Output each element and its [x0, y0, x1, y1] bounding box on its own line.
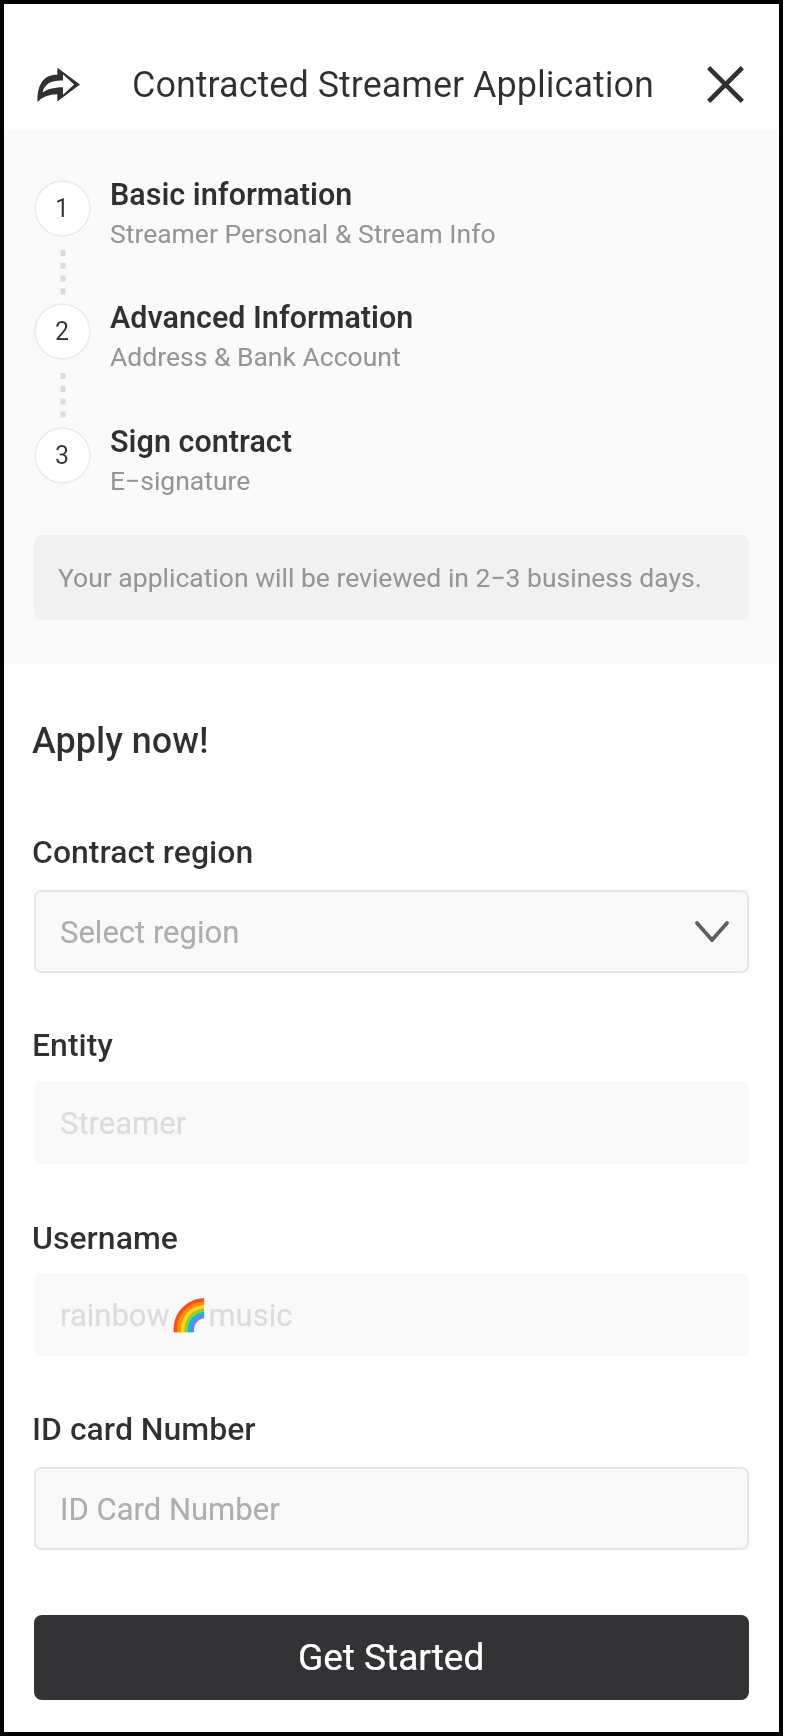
staticText: Apply now!	[32, 720, 209, 762]
staticText: 2	[55, 317, 70, 346]
staticText: 1	[55, 194, 70, 223]
button[interactable]: Share	[27, 53, 89, 115]
staticText: Streamer Personal & Stream Info	[110, 218, 496, 249]
button[interactable]: ID Card Number	[34, 1467, 749, 1550]
button[interactable]: Close	[695, 54, 755, 114]
staticText: E−signature	[110, 465, 251, 496]
staticText: Select region	[60, 914, 240, 950]
staticText: Entity	[32, 1026, 114, 1064]
staticText: Sign contract	[110, 424, 292, 460]
staticText: Streamer	[60, 1105, 187, 1141]
staticText: Get Started	[298, 1636, 485, 1679]
staticText: ID Card Number	[60, 1491, 280, 1527]
staticText: rainbow🌈music	[60, 1297, 293, 1333]
button[interactable]: Streamer	[34, 1081, 749, 1164]
staticText: Your application will be reviewed in 2−3…	[58, 562, 702, 593]
staticText: 3	[55, 441, 70, 470]
staticText: ID card Number	[32, 1410, 256, 1448]
staticText: Username	[32, 1219, 178, 1257]
staticText: Address & Bank Account	[110, 341, 401, 372]
staticText: Contracted Streamer Application	[132, 64, 654, 106]
staticText: Basic information	[110, 177, 353, 213]
button[interactable]: Select region	[34, 890, 749, 973]
button[interactable]: rainbow🌈music	[34, 1273, 749, 1356]
button[interactable]: Get Started	[34, 1615, 749, 1700]
staticText: Contract region	[32, 833, 254, 871]
staticText: Advanced Information	[110, 300, 414, 336]
